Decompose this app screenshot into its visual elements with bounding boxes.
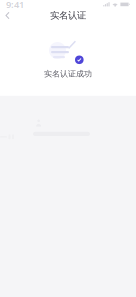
button[interactable]: 返回 <box>1 9 14 22</box>
staticText: 实名认证 <box>50 10 86 21</box>
staticText: 实名认证成功 <box>44 69 92 79</box>
staticText: 9:41 <box>6 0 24 11</box>
